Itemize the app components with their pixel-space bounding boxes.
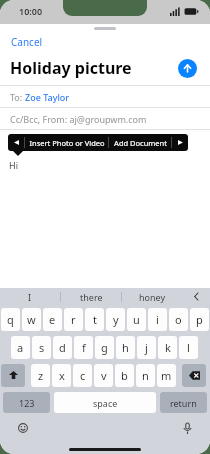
button[interactable]: return <box>160 392 207 413</box>
staticText: c <box>80 368 86 383</box>
button[interactable]: t <box>85 308 104 331</box>
button[interactable]: o <box>169 308 188 331</box>
staticText: u <box>133 312 140 327</box>
button[interactable]: space <box>54 392 156 413</box>
button[interactable]: Shift <box>1 364 25 387</box>
staticText: Hi <box>9 159 18 171</box>
staticText: Zoe Taylor <box>25 91 70 103</box>
button[interactable]: w <box>22 308 41 331</box>
staticText: Cancel <box>11 35 43 49</box>
staticText: x <box>59 368 65 383</box>
staticText: a <box>17 340 24 355</box>
button[interactable]: j <box>137 336 156 359</box>
button[interactable]: z <box>31 364 50 387</box>
staticText: Add Document <box>114 138 167 148</box>
staticText: b <box>121 368 128 383</box>
staticText: o <box>175 312 182 327</box>
staticText: z <box>38 368 44 383</box>
button[interactable]: Add Document <box>109 134 171 151</box>
staticText: g <box>101 340 108 355</box>
button[interactable]: b <box>115 364 134 387</box>
staticText: return <box>170 397 197 409</box>
button[interactable]: y <box>106 308 125 331</box>
button[interactable]: h <box>116 336 135 359</box>
button[interactable]: Previous <box>8 134 24 151</box>
button[interactable]: d <box>53 336 72 359</box>
button[interactable]: n <box>136 364 155 387</box>
staticText: p <box>196 312 203 327</box>
button[interactable]: x <box>52 364 71 387</box>
staticText: l <box>187 340 190 355</box>
staticText: s <box>39 340 45 355</box>
staticText: 10:00 <box>19 5 43 17</box>
staticText: k <box>165 340 171 355</box>
button[interactable]: k <box>158 336 177 359</box>
button[interactable]: q <box>1 308 20 331</box>
button[interactable]: f <box>74 336 93 359</box>
button[interactable]: honey <box>122 288 182 305</box>
button[interactable]: g <box>95 336 114 359</box>
staticText: t <box>93 312 97 327</box>
staticText: j <box>145 340 148 355</box>
staticText: To: <box>10 91 25 103</box>
button[interactable]: r <box>64 308 83 331</box>
button[interactable]: Collapse <box>182 288 210 305</box>
button[interactable]: i <box>148 308 167 331</box>
button[interactable]: s <box>32 336 51 359</box>
staticText: y <box>113 312 119 327</box>
staticText: honey <box>139 291 166 303</box>
button[interactable]: v <box>94 364 113 387</box>
staticText: d <box>59 340 66 355</box>
staticText: n <box>142 368 149 383</box>
staticText: space <box>93 397 118 409</box>
button[interactable]: I <box>0 288 60 305</box>
staticText: there <box>80 291 103 303</box>
button[interactable]: e <box>43 308 62 331</box>
button[interactable]: Next <box>172 134 188 151</box>
button[interactable]: Dictate <box>180 421 194 435</box>
button[interactable]: c <box>73 364 92 387</box>
button[interactable]: Cancel <box>9 33 45 51</box>
staticText: Insert Photo or Video <box>29 138 105 148</box>
button[interactable]: Emoji <box>16 421 30 435</box>
button[interactable]: a <box>11 336 30 359</box>
button[interactable]: p <box>190 308 209 331</box>
staticText: i <box>156 312 159 327</box>
staticText: m <box>161 368 172 383</box>
staticText: r <box>71 312 76 327</box>
button[interactable]: Send <box>178 59 197 78</box>
button[interactable]: l <box>179 336 198 359</box>
button[interactable]: Backspace <box>182 364 206 387</box>
staticText: I <box>28 291 32 303</box>
button[interactable]: u <box>127 308 146 331</box>
staticText: v <box>101 368 107 383</box>
button[interactable]: 123 <box>3 392 50 413</box>
staticText: h <box>122 340 129 355</box>
button[interactable]: Insert Photo or Video <box>25 134 108 151</box>
staticText: Holiday picture <box>10 57 132 79</box>
button[interactable]: there <box>61 288 121 305</box>
staticText: Cc/Bcc, From: aj@groupwm.com <box>10 113 147 125</box>
staticText: q <box>7 312 14 327</box>
button[interactable]: m <box>157 364 176 387</box>
staticText: 123 <box>19 397 35 409</box>
button[interactable]: To: <box>0 86 210 107</box>
staticText: e <box>49 312 56 327</box>
staticText: w <box>27 312 36 327</box>
button[interactable]: Cc/Bcc, From: aj@groupwm.com <box>0 108 210 129</box>
staticText: f <box>82 340 86 355</box>
